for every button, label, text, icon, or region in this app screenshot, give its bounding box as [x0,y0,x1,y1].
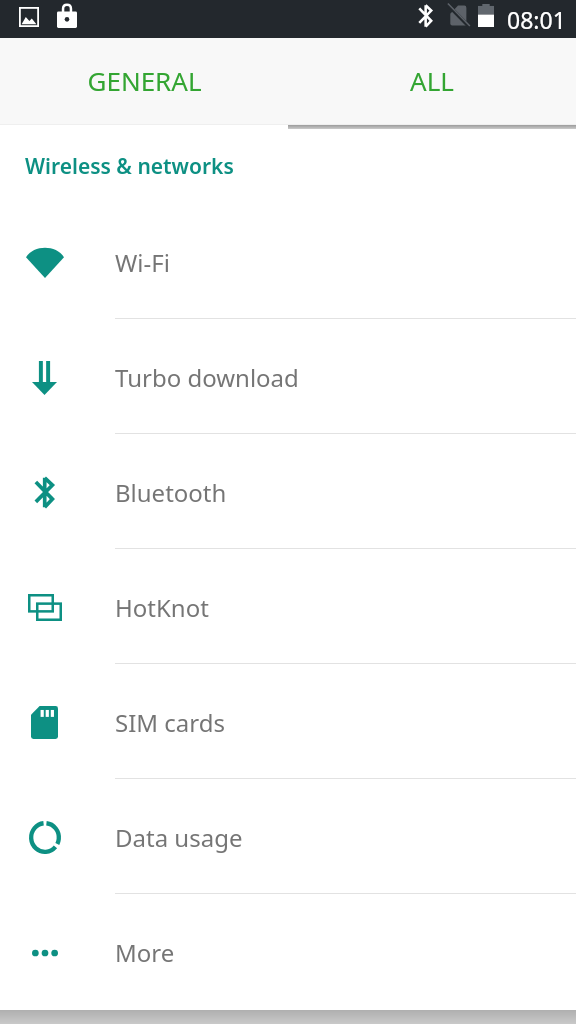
staticText: 08:01 [507,4,566,35]
other: Bluetooth on [418,4,433,28]
staticText: Wireless & networks [25,152,234,181]
staticText: ALL [410,63,454,98]
staticText: SIM cards [115,706,225,739]
staticText: Wi-Fi [115,246,170,279]
staticText: Turbo download [115,361,299,394]
button[interactable]: Data usage [0,779,576,894]
button[interactable]: More [0,894,576,1009]
button[interactable]: Turbo download [0,319,576,434]
staticText: More [115,936,175,969]
other: No SIM card [447,4,469,27]
staticText: Data usage [115,821,243,854]
button[interactable]: Bluetooth [0,434,576,549]
button[interactable]: SIM cards [0,664,576,779]
other: Battery [478,4,494,27]
button[interactable]: ALL [288,38,576,125]
staticText: HotKnot [115,591,209,624]
other: Screen locked [57,4,77,28]
staticText: Bluetooth [115,476,227,509]
other: Screenshot [19,7,39,27]
button[interactable]: Wi-Fi [0,204,576,319]
staticText: GENERAL [87,63,202,98]
button[interactable]: HotKnot [0,549,576,664]
button[interactable]: GENERAL [0,38,288,125]
